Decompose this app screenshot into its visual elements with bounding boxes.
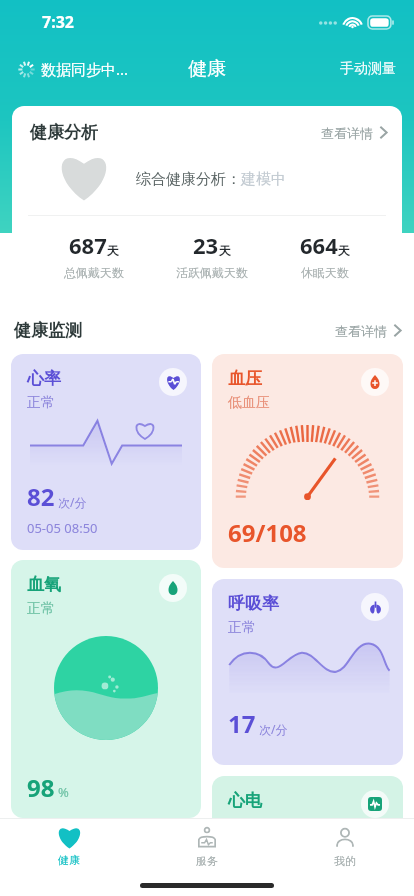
staticText: 05-05 08:50 — [27, 519, 98, 536]
staticText: 血压 — [228, 368, 262, 389]
staticText: 健康 — [58, 853, 80, 867]
button[interactable]: 健康分析 — [12, 106, 402, 298]
staticText: 综合健康分析： — [136, 170, 241, 189]
staticText: 活跃佩戴天数 — [176, 265, 248, 280]
staticText: 呼吸率 — [228, 593, 279, 614]
staticText: 次/分 — [58, 494, 87, 510]
staticText: 正常 — [228, 619, 256, 637]
staticText: 664 — [300, 230, 338, 260]
button[interactable]: 手动测量 — [334, 54, 402, 84]
staticText: 总佩戴天数 — [64, 265, 124, 280]
staticText: 健康监测 — [14, 320, 82, 341]
staticText: 血氧 — [27, 574, 61, 595]
button[interactable]: 呼吸率 — [212, 579, 403, 765]
staticText: 心电 — [228, 790, 262, 811]
staticText: 服务 — [196, 854, 218, 868]
staticText: 69/108 — [228, 516, 307, 549]
staticText: 低血压 — [228, 394, 270, 412]
button[interactable]: 血压 — [212, 354, 403, 568]
button[interactable]: 健康 — [0, 819, 138, 874]
staticText: 健康 — [188, 57, 226, 81]
staticText: 正常 — [27, 600, 55, 618]
staticText: 建模中 — [241, 170, 286, 189]
staticText: 98 — [27, 771, 55, 804]
staticText: 23 — [193, 230, 219, 260]
button[interactable]: 数据同步中... — [16, 55, 131, 83]
staticText: 次/分 — [259, 721, 288, 737]
staticText: 查看详情 — [321, 125, 373, 141]
staticText: 正常 — [27, 394, 55, 412]
button[interactable]: 服务 — [138, 819, 276, 874]
other: Blood pressure — [361, 368, 389, 396]
staticText: % — [58, 783, 69, 801]
staticText: 82 — [27, 480, 55, 513]
staticText: 7:32 — [42, 11, 74, 33]
other: Respiratory rate — [361, 593, 389, 621]
staticText: 健康分析 — [30, 122, 98, 143]
button[interactable]: 心率 — [11, 354, 201, 550]
staticText: 天 — [107, 243, 119, 258]
staticText: 我的 — [334, 854, 356, 868]
other: Blood oxygen — [159, 574, 187, 602]
staticText: 查看详情 — [335, 323, 387, 339]
staticText: 天 — [219, 243, 231, 258]
staticText: 天 — [338, 243, 350, 258]
staticText: -- — [228, 816, 238, 835]
staticText: 心率 — [27, 368, 61, 389]
staticText: 687 — [69, 230, 107, 260]
button[interactable]: 血氧 — [11, 560, 201, 818]
staticText: 数据同步中... — [41, 59, 129, 79]
other: Heart rate — [159, 368, 187, 396]
staticText: 17 — [228, 707, 256, 740]
button[interactable]: 我的 — [276, 819, 414, 874]
staticText: 休眠天数 — [301, 265, 349, 280]
button[interactable]: 心电 — [212, 776, 403, 846]
staticText: 手动测量 — [340, 60, 396, 78]
other: ECG — [361, 790, 389, 818]
button[interactable]: 健康监测 — [14, 320, 402, 341]
